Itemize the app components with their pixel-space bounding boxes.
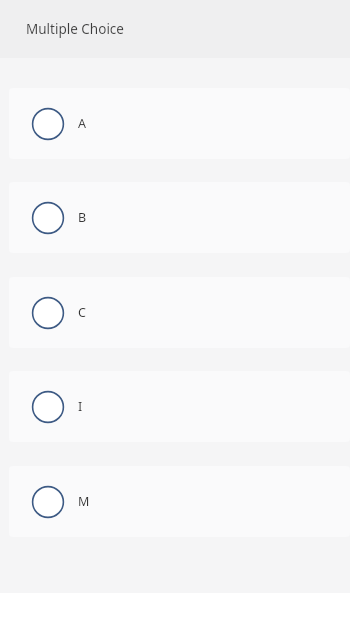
button[interactable]: A xyxy=(9,88,350,159)
staticText: Multiple Choice xyxy=(26,20,124,38)
staticText: B xyxy=(78,209,87,226)
button[interactable]: B xyxy=(9,182,350,253)
staticText: A xyxy=(78,115,86,132)
button[interactable]: C xyxy=(9,277,350,348)
staticText: M xyxy=(78,493,90,510)
staticText: C xyxy=(78,304,86,321)
button[interactable]: I xyxy=(9,371,350,442)
button[interactable]: M xyxy=(9,466,350,537)
staticText: I xyxy=(78,398,83,415)
